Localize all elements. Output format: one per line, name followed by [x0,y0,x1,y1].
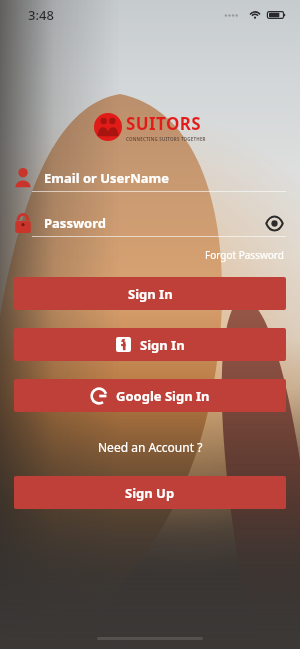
staticText: Email or UserName [44,169,169,187]
button[interactable]: Sign In [14,328,286,361]
staticText: 3:48 [28,6,54,24]
staticText: Password [44,214,106,232]
button[interactable]: Show password [262,211,286,235]
button[interactable]: Sign Up [14,476,286,509]
staticText: SUITORS [126,112,202,135]
staticText: CONNECTING SUITORS TOGETHER [126,136,206,142]
button[interactable]: Need an Account ? [95,436,206,458]
staticText: Sign In [140,336,185,354]
staticText: Sign Up [125,484,175,502]
button[interactable]: Google Sign In [14,379,286,412]
staticText: Sign In [128,285,173,303]
staticText: Forgot Password [205,248,284,262]
staticText: Google Sign In [116,387,210,405]
staticText: Need an Account ? [98,439,203,455]
button[interactable]: Forgot Password [203,246,286,264]
button[interactable]: Sign In [14,277,286,310]
